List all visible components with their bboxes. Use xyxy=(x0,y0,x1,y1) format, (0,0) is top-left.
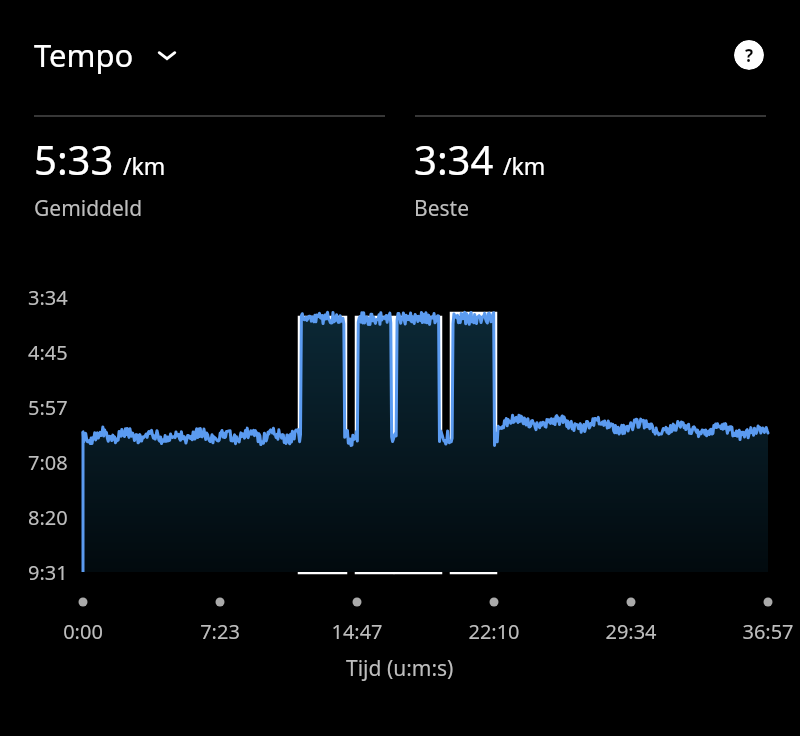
button[interactable]: 3:34 xyxy=(414,132,546,223)
button[interactable]: Tempo xyxy=(34,34,180,76)
button[interactable]: Help xyxy=(734,40,764,70)
staticText: 0:00 xyxy=(45,618,121,645)
staticText: 29:34 xyxy=(593,618,669,645)
staticText: /km xyxy=(503,150,546,181)
staticText: Beste xyxy=(414,194,469,223)
staticText: 7:23 xyxy=(182,618,258,645)
staticText: 5:57 xyxy=(28,394,68,421)
button[interactable]: 5:33 xyxy=(34,132,166,223)
staticText: 36:57 xyxy=(730,618,800,645)
staticText: 7:08 xyxy=(28,449,68,476)
staticText: 9:31 xyxy=(28,559,68,586)
staticText: Gemiddeld xyxy=(34,194,143,223)
staticText: 3:34 xyxy=(414,132,494,186)
staticText: 3:34 xyxy=(28,284,68,311)
staticText: /km xyxy=(123,150,166,181)
staticText: ? xyxy=(745,44,754,67)
staticText: Tempo xyxy=(34,34,134,76)
staticText: Tijd (u:m:s) xyxy=(346,654,454,683)
staticText: 4:45 xyxy=(28,339,68,366)
staticText: 22:10 xyxy=(456,618,532,645)
staticText: 14:47 xyxy=(319,618,395,645)
staticText: 8:20 xyxy=(28,504,68,531)
staticText: 5:33 xyxy=(34,132,114,186)
